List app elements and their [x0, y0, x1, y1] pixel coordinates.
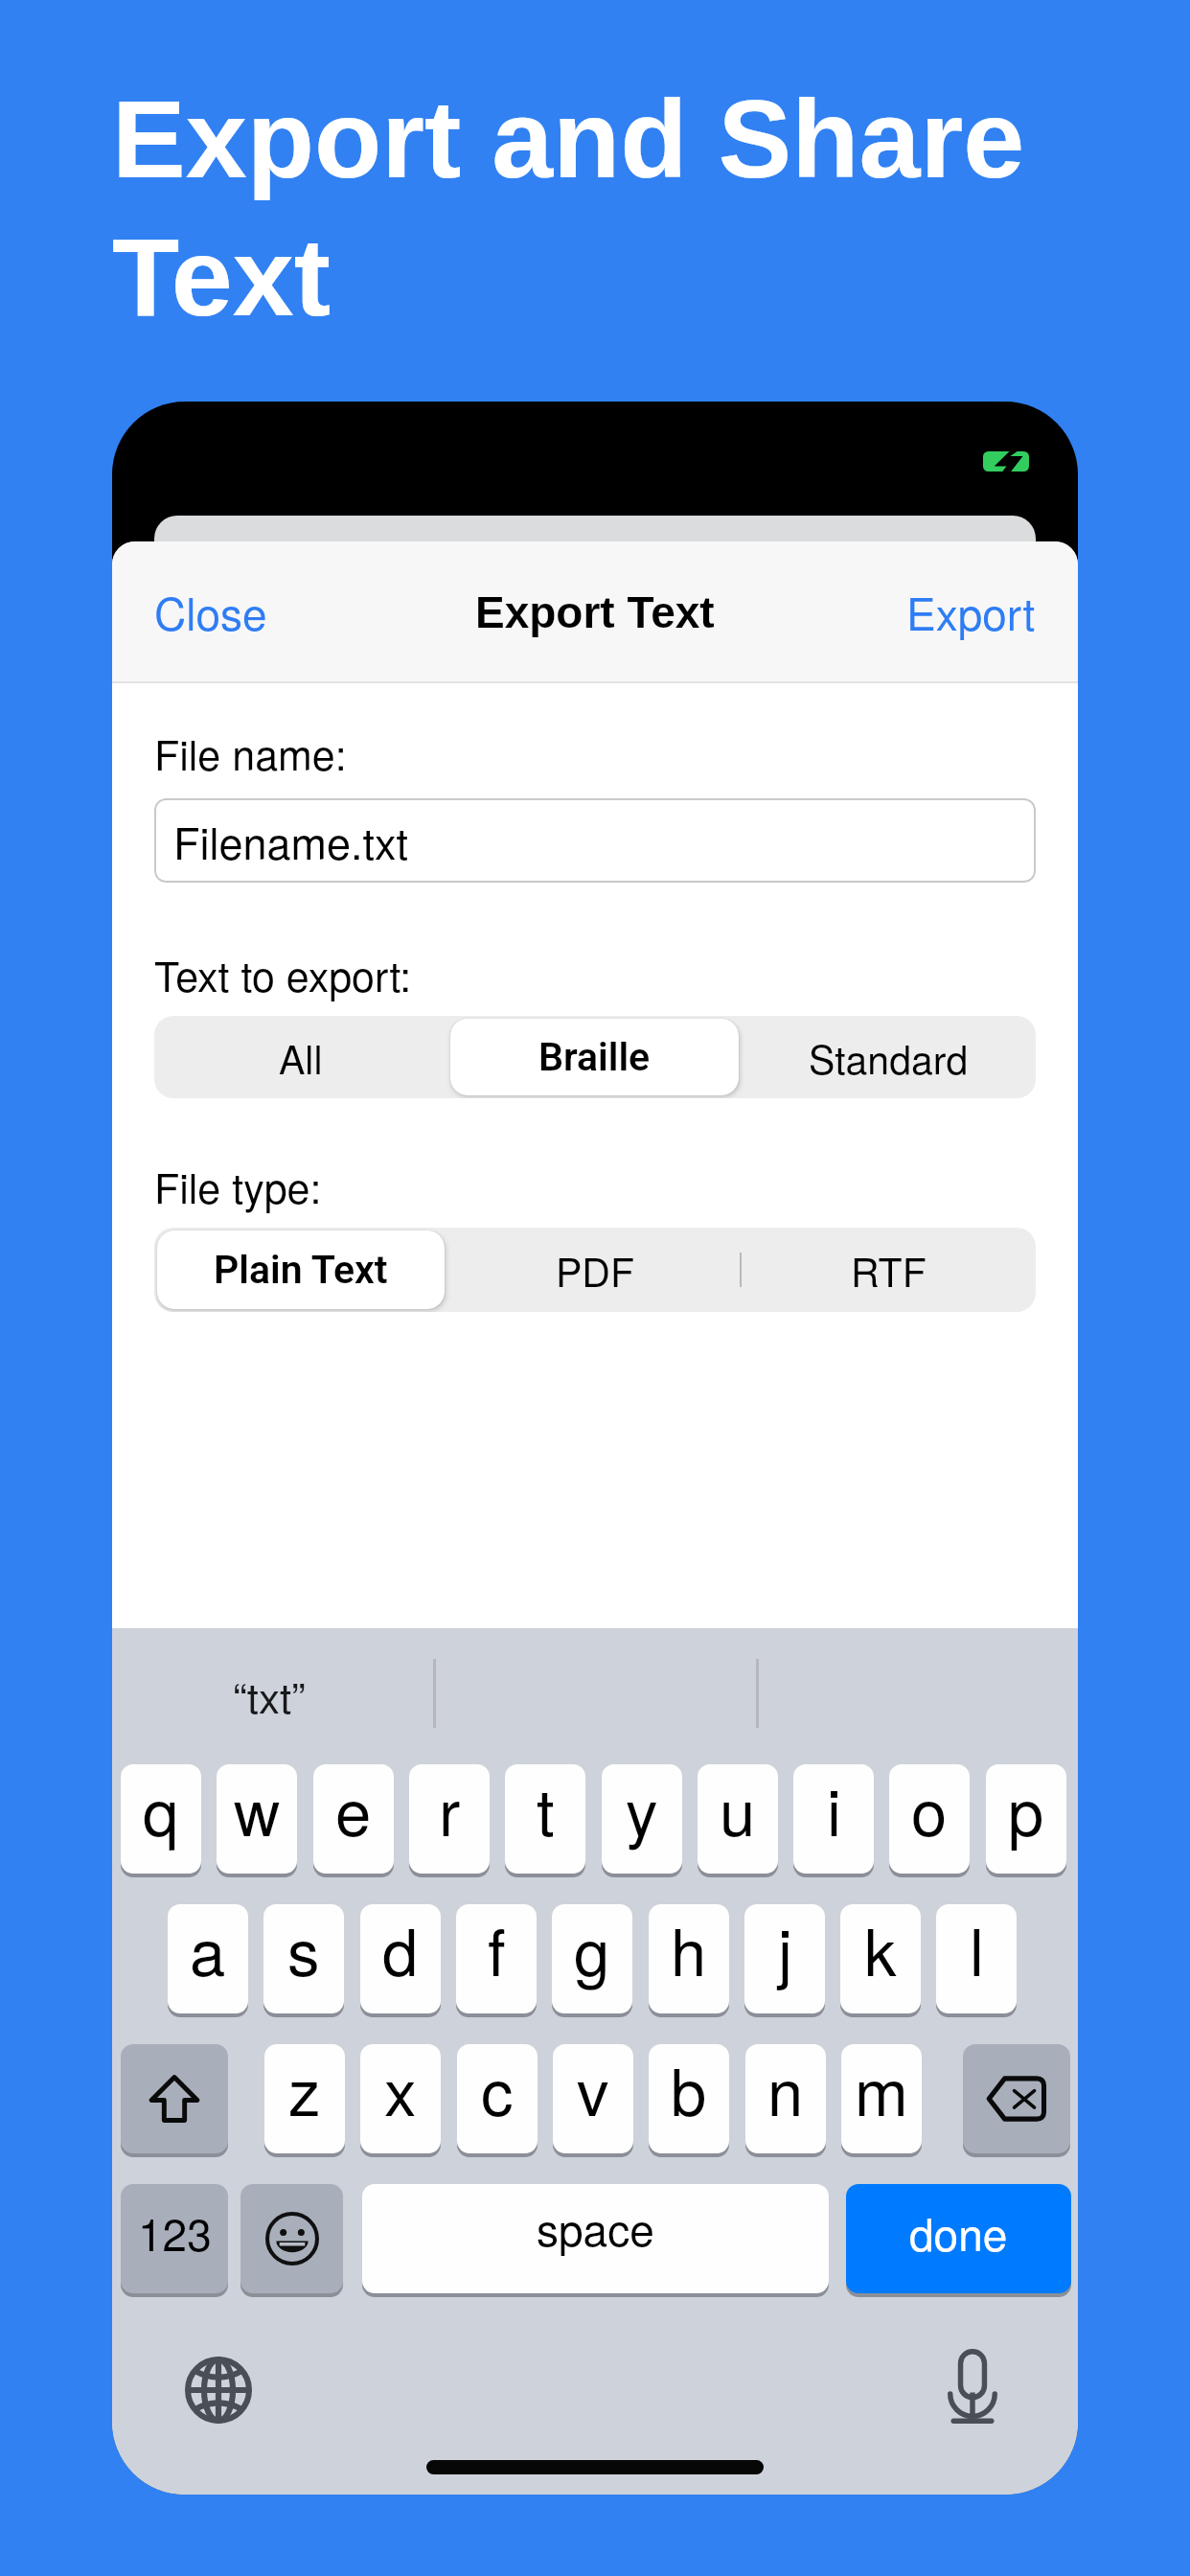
button[interactable]: e [313, 1764, 394, 1874]
staticText: Standard [809, 1029, 969, 1086]
button[interactable]: r [409, 1764, 490, 1874]
button[interactable]: v [553, 2044, 633, 2153]
button[interactable]: Export [864, 559, 1078, 664]
staticText: Text to export: [154, 945, 412, 1004]
staticText: v [577, 2044, 609, 2134]
staticText: l [970, 1904, 984, 1994]
staticText: All [279, 1029, 323, 1086]
button[interactable]: t [505, 1764, 585, 1874]
button[interactable]: i [793, 1764, 874, 1874]
staticText: z [288, 2044, 321, 2134]
button[interactable]: m [841, 2044, 922, 2153]
button[interactable]: a [168, 1904, 248, 2013]
staticText: “txt” [233, 1665, 306, 1725]
button[interactable]: f [456, 1904, 537, 2013]
button[interactable]: x [360, 2044, 441, 2153]
staticText: n [767, 2044, 804, 2134]
staticText: Export [906, 580, 1036, 643]
button[interactable]: All [157, 1019, 445, 1095]
button[interactable]: Filename.txt [154, 798, 1036, 883]
button[interactable]: s [263, 1904, 344, 2013]
button[interactable]: Shift [121, 2044, 228, 2153]
staticText: y [626, 1764, 658, 1854]
button[interactable]: Emoji [240, 2184, 343, 2293]
staticText: k [864, 1904, 897, 1994]
staticText: d [382, 1904, 419, 1994]
staticText: t [537, 1764, 555, 1854]
staticText: done [909, 2200, 1008, 2264]
staticText: c [481, 2044, 514, 2134]
staticText: r [439, 1764, 461, 1854]
staticText: PDF [556, 1242, 634, 1299]
button[interactable]: g [552, 1904, 632, 2013]
button[interactable]: d [360, 1904, 441, 2013]
button[interactable]: done [846, 2184, 1071, 2293]
staticText: h [671, 1904, 707, 1994]
button[interactable]: Braille [450, 1019, 739, 1095]
staticText: Close [154, 580, 267, 643]
staticText: Export Text [475, 587, 715, 636]
staticText: p [1008, 1764, 1044, 1854]
button[interactable]: l [936, 1904, 1017, 2013]
button[interactable]: RTF [744, 1230, 1033, 1309]
button[interactable]: Standard [744, 1019, 1033, 1095]
staticText: f [488, 1904, 506, 1994]
staticText: j [778, 1904, 792, 1994]
staticText: a [190, 1904, 226, 1994]
button[interactable]: n [745, 2044, 826, 2153]
button[interactable]: 123 [121, 2184, 228, 2293]
staticText: q [143, 1764, 179, 1854]
button[interactable]: q [121, 1764, 201, 1874]
staticText: File type: [154, 1157, 322, 1216]
staticText: o [911, 1764, 948, 1854]
button[interactable]: PDF [450, 1230, 739, 1309]
staticText: RTF [851, 1242, 927, 1299]
staticText: Braille [538, 1034, 651, 1080]
button[interactable]: z [264, 2044, 345, 2153]
staticText: w [234, 1764, 281, 1854]
button[interactable]: y [602, 1764, 682, 1874]
button[interactable]: u [698, 1764, 778, 1874]
button[interactable]: b [649, 2044, 729, 2153]
button[interactable]: j [744, 1904, 825, 2013]
button[interactable]: c [457, 2044, 538, 2153]
button[interactable]: w [217, 1764, 297, 1874]
button[interactable]: k [840, 1904, 921, 2013]
staticText: u [720, 1764, 756, 1854]
staticText: b [671, 2044, 707, 2134]
staticText: Export and Share Text [112, 78, 1025, 339]
staticText: 123 [138, 2200, 212, 2264]
button[interactable]: p [986, 1764, 1066, 1874]
staticText: g [574, 1904, 610, 1994]
button[interactable]: Close [112, 559, 309, 664]
button[interactable]: h [649, 1904, 729, 2013]
staticText: space [537, 2196, 654, 2259]
staticText: Filename.txt [173, 810, 409, 871]
button[interactable]: Dictation [927, 2340, 1018, 2432]
button[interactable]: Plain Text [157, 1230, 445, 1309]
staticText: File name: [154, 724, 347, 783]
button[interactable]: Change keyboard language [172, 2344, 264, 2436]
staticText: x [384, 2044, 417, 2134]
button[interactable]: o [889, 1764, 970, 1874]
staticText: e [335, 1764, 372, 1854]
staticText: m [855, 2044, 908, 2134]
staticText: s [287, 1904, 320, 1994]
staticText: Plain Text [214, 1247, 388, 1293]
button[interactable]: space [362, 2184, 829, 2293]
button[interactable]: Backspace [963, 2044, 1070, 2153]
staticText: i [827, 1764, 841, 1854]
